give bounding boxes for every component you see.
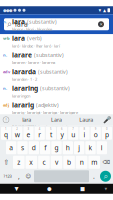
staticText: vrb — [3, 36, 10, 41]
button[interactable]: h — [63, 141, 73, 154]
staticText: ☺ — [25, 173, 31, 179]
staticText: 3 — [27, 127, 29, 131]
button[interactable]: Search — [99, 170, 112, 182]
button[interactable]: a — [6, 141, 16, 154]
staticText: j — [78, 143, 80, 152]
staticText: c — [42, 158, 45, 167]
staticText: lara — [12, 34, 25, 43]
staticText: . — [93, 172, 95, 181]
button[interactable]: Backspace — [101, 156, 112, 169]
button[interactable]: Lara — [42, 114, 71, 125]
button[interactable]: Recent apps — [66, 184, 99, 194]
button[interactable]: lara — [12, 114, 42, 125]
staticText: b — [67, 158, 71, 167]
staticText: r — [38, 130, 41, 139]
staticText: n — [80, 158, 84, 167]
staticText: d — [32, 143, 36, 152]
staticText: g — [54, 143, 58, 152]
staticText: ⇧ — [3, 158, 9, 166]
button[interactable]: Voice input — [101, 114, 113, 125]
button[interactable]: 6 — [57, 127, 67, 140]
staticText: (substantiv) — [27, 18, 57, 25]
staticText: y — [61, 130, 64, 139]
staticText: n. — [3, 124, 7, 129]
staticText: (substantiv) — [38, 68, 68, 75]
staticText: , — [18, 172, 20, 181]
staticText: ?123 — [3, 174, 11, 179]
button[interactable]: m — [88, 156, 100, 169]
staticText: ● — [47, 186, 52, 192]
staticText: lara — [12, 17, 25, 26]
button[interactable]: Shift — [1, 156, 12, 169]
button[interactable]: Laura — [71, 114, 101, 125]
staticText: e — [26, 130, 30, 139]
button[interactable]: Numbers and symbols — [1, 170, 14, 182]
button[interactable]: v — [51, 156, 62, 169]
staticText: 0 — [106, 127, 108, 131]
staticText: lararig · lararigt · larariga · larariga… — [12, 110, 78, 120]
button[interactable]: b — [63, 156, 75, 169]
staticText: a — [9, 143, 13, 152]
button[interactable]: x — [26, 156, 37, 169]
staticText: ▾ — [98, 7, 101, 13]
staticText: f — [44, 143, 46, 152]
staticText: v — [55, 158, 58, 167]
button[interactable]: 4 — [35, 127, 45, 140]
button[interactable]: n. — [0, 83, 113, 99]
button[interactable]: l — [97, 141, 107, 154]
button[interactable]: Home — [33, 184, 66, 194]
staticText: adv — [3, 69, 10, 74]
button[interactable]: k — [85, 141, 96, 154]
staticText: lararingen — [12, 93, 30, 98]
button[interactable]: n. — [0, 16, 113, 33]
staticText: o — [94, 130, 98, 139]
staticText: w — [15, 130, 20, 139]
staticText: (substantiv) — [40, 85, 70, 92]
staticText: adj — [3, 102, 9, 108]
button[interactable]: n — [76, 156, 87, 169]
button[interactable]: 5 — [46, 127, 56, 140]
staticText: z — [17, 158, 20, 167]
staticText: i — [83, 130, 85, 139]
staticText: n. — [3, 52, 7, 58]
button[interactable]: d — [29, 141, 39, 154]
button[interactable]: 2 — [12, 127, 22, 140]
button[interactable]: 0 — [102, 127, 112, 140]
button[interactable]: More — [99, 184, 113, 194]
button[interactable]: j — [74, 141, 84, 154]
button[interactable]: Comma — [15, 170, 23, 182]
staticText: 9 — [95, 127, 97, 131]
button[interactable]: n. — [0, 49, 113, 66]
staticText: u — [71, 130, 75, 139]
button[interactable]: z — [13, 156, 25, 169]
staticText: 1 — [5, 127, 7, 131]
staticText: x — [29, 158, 33, 167]
staticText: lararig — [12, 100, 34, 109]
button[interactable]: 3 — [23, 127, 34, 140]
button[interactable]: c — [38, 156, 50, 169]
button[interactable]: adv — [0, 66, 113, 83]
staticText: (substantiv) — [34, 51, 64, 58]
staticText: (substantiv) — [38, 123, 68, 130]
button[interactable]: Hide keyboard — [0, 184, 33, 194]
button[interactable]: Clear search — [96, 19, 106, 29]
button[interactable]: g — [51, 141, 62, 154]
button[interactable]: adj — [0, 99, 113, 121]
button[interactable]: Suggestion info — [0, 114, 12, 125]
staticText: ●●● — [3, 8, 12, 12]
button[interactable]: Period — [90, 170, 98, 182]
staticText: laró · lárobe · lhar laró · larí — [12, 43, 60, 48]
staticText: 4 — [39, 127, 41, 131]
button[interactable]: Emoji — [24, 170, 33, 182]
button[interactable]: f — [40, 141, 50, 154]
button[interactable]: s — [17, 141, 28, 154]
staticText: ✕ — [99, 22, 102, 26]
staticText: n. — [3, 19, 7, 24]
button[interactable]: 7 — [68, 127, 78, 140]
button[interactable]: 1 — [1, 127, 11, 140]
button[interactable]: vrb — [0, 33, 113, 49]
button[interactable]: 8 — [79, 127, 90, 140]
button[interactable]: n. — [0, 121, 113, 132]
button[interactable]: 9 — [91, 127, 101, 140]
